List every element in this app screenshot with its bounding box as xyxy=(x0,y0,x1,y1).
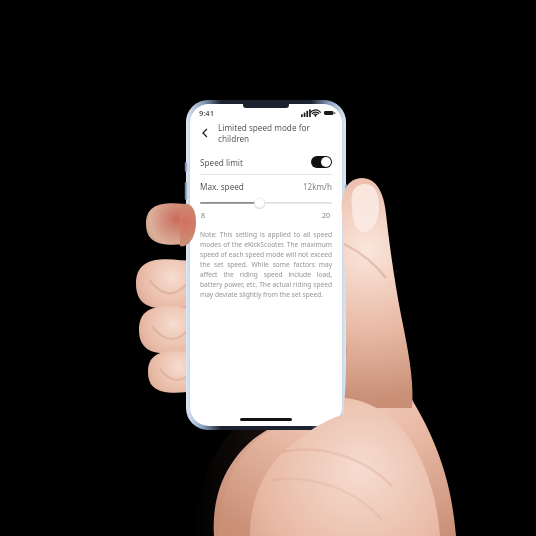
staticText: Speed limit xyxy=(200,157,243,168)
staticText: 9:41 xyxy=(199,108,214,118)
staticText: Note: This setting is applied to all spe… xyxy=(200,230,332,299)
button[interactable]: Speed limit xyxy=(190,150,342,174)
staticText: 12km/h xyxy=(303,181,332,192)
button[interactable]: Back xyxy=(197,125,213,141)
staticText: 20 xyxy=(322,211,331,221)
button[interactable]: Max speed slider xyxy=(190,197,342,211)
staticText: Limited speed mode for children xyxy=(218,122,333,144)
staticText: Max. speed xyxy=(200,181,244,192)
staticText: 8 xyxy=(201,211,206,221)
button[interactable]: Speed limit toggle, on xyxy=(311,156,332,168)
